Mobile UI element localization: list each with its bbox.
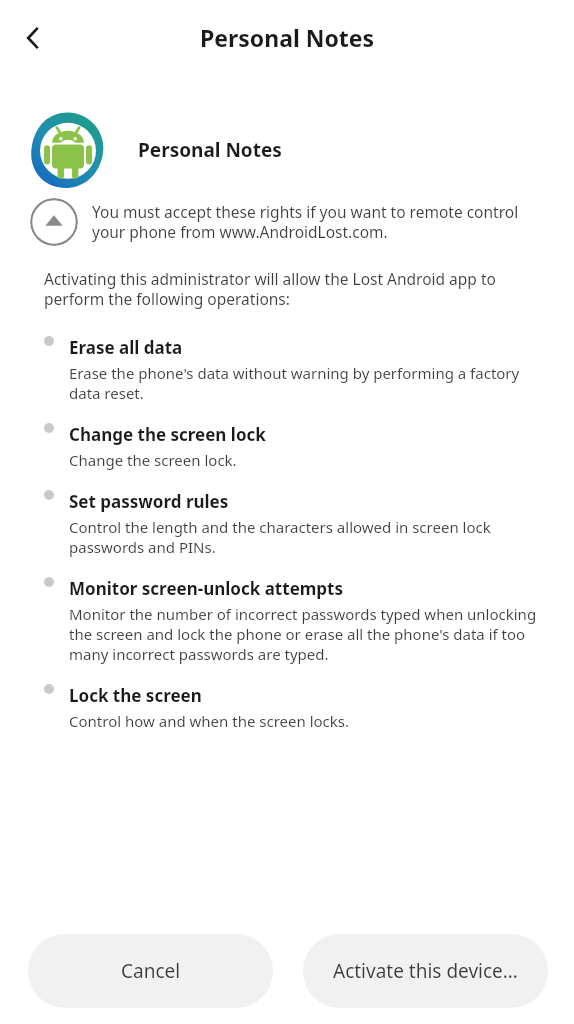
staticText: Erase all data (69, 336, 183, 359)
staticText: Control the length and the characters al… (69, 517, 542, 557)
staticText: Change the screen lock. (69, 450, 237, 470)
staticText: Lock the screen (69, 684, 202, 707)
staticText: You must accept these rights if you want… (92, 201, 540, 243)
staticText: Erase the phone's data without warning b… (69, 363, 542, 403)
staticText: Personal Notes (200, 22, 375, 53)
staticText: Control how and when the screen locks. (69, 711, 349, 731)
button[interactable]: Cancel (28, 934, 273, 1008)
staticText: Personal Notes (138, 137, 282, 163)
button[interactable]: Collapse details (30, 198, 78, 246)
staticText: Monitor the number of incorrect password… (69, 604, 542, 664)
button[interactable]: Set password rules (0, 490, 574, 557)
staticText: Activating this administrator will allow… (44, 268, 542, 310)
staticText: Cancel (121, 958, 181, 984)
button[interactable]: Monitor screen-unlock attempts (0, 577, 574, 664)
button[interactable]: Change the screen lock (0, 423, 574, 470)
button[interactable]: Back (8, 13, 58, 63)
staticText: Monitor screen-unlock attempts (69, 577, 344, 600)
button[interactable]: Lock the screen (0, 684, 574, 731)
staticText: Set password rules (69, 490, 229, 513)
button[interactable]: Erase all data (0, 336, 574, 403)
staticText: Activate this device… (333, 958, 518, 984)
staticText: Change the screen lock (69, 423, 266, 446)
button[interactable]: Activate this device… (303, 934, 548, 1008)
